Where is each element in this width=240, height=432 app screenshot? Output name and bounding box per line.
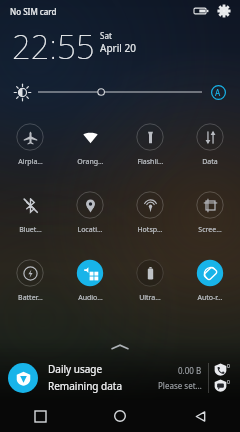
staticText: Orang… [77,157,104,167]
staticText: 0 [227,379,230,386]
staticText: Sat [100,30,112,41]
button[interactable]: Bluet… [0,185,60,253]
staticText: A [215,87,221,98]
staticText: Batter… [18,293,43,303]
staticText: 0 [227,363,230,370]
staticText: 0.00 B [178,365,202,376]
button[interactable]: Blocked messages [214,379,227,392]
button[interactable]: Data [180,117,240,185]
staticText: 22:55 [12,24,95,69]
button[interactable] [38,82,202,102]
staticText: April 20 [100,41,136,55]
button[interactable]: Auto-r… [180,253,240,321]
button[interactable]: Daily usage [0,355,240,400]
button[interactable]: Orang… [60,117,120,185]
staticText: Please set… [158,380,202,391]
staticText: Daily usage [48,362,103,376]
button[interactable]: Scree… [180,185,240,253]
button[interactable]: Home [80,400,160,432]
button[interactable]: Ultra… [120,253,180,321]
staticText: Auto-r… [197,293,223,303]
button[interactable]: Recents [0,400,80,432]
staticText: Audio… [78,293,103,303]
button[interactable]: Auto brightness [208,82,228,102]
button[interactable]: Locati… [60,185,120,253]
button[interactable]: Batter… [0,253,60,321]
staticText: Locati… [77,225,103,235]
button[interactable]: Settings [216,3,232,19]
staticText: Ultra… [139,293,161,303]
staticText: Data [202,157,218,167]
staticText: Hotsp… [137,225,163,235]
staticText: Scree… [198,225,222,235]
button[interactable]: Brightness [12,82,32,102]
button[interactable]: Airpla… [0,117,60,185]
button[interactable]: Audio… [60,253,120,321]
button[interactable]: Blocked calls [214,363,227,376]
staticText: No SIM card [10,6,57,17]
staticText: Flashli… [137,157,164,167]
staticText: Bluet… [19,225,42,235]
button[interactable]: Hotsp… [120,185,180,253]
button[interactable]: Back [160,400,240,432]
staticText: Airpla… [18,157,43,167]
staticText: Remaining data [48,379,123,393]
button[interactable]: Flashli… [120,117,180,185]
button[interactable]: Collapse [0,339,240,355]
